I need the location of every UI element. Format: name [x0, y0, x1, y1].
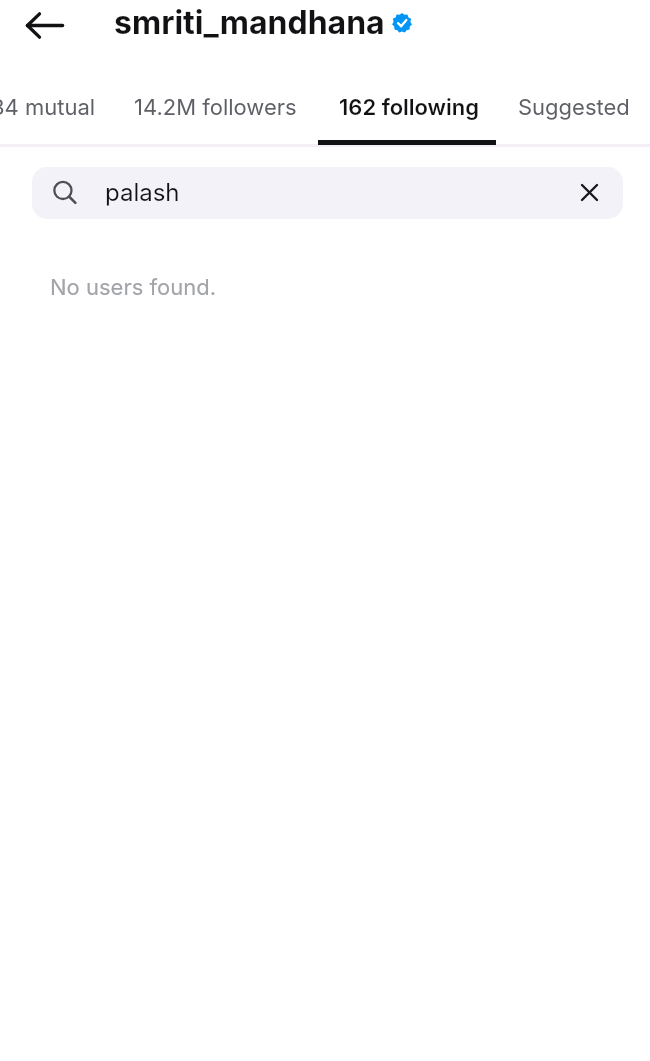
staticText: 34 mutual [0, 94, 96, 121]
button[interactable]: 14.2M followers [134, 84, 297, 131]
staticText: 14.2M followers [134, 94, 297, 121]
button[interactable]: Back [13, 0, 75, 56]
staticText: 162 following [339, 94, 480, 121]
button[interactable]: Suggested [518, 84, 630, 131]
staticText: palash [105, 178, 180, 207]
staticText: No users found. [50, 274, 216, 301]
staticText: smriti_mandhana [114, 3, 385, 42]
staticText: Suggested [518, 94, 630, 121]
button[interactable]: Clear search [568, 171, 610, 213]
button[interactable]: 34 mutual [0, 84, 96, 131]
button[interactable]: 162 following [339, 84, 480, 131]
button[interactable]: palash [32, 167, 623, 219]
